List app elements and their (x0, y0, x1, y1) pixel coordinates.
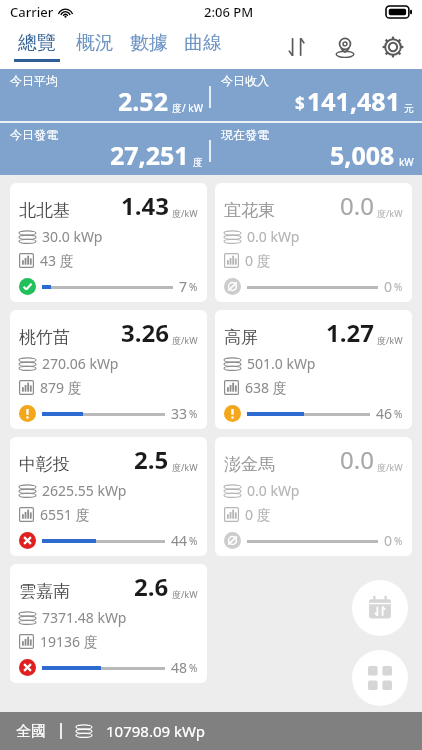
staticText: % (189, 661, 198, 675)
staticText: 澎金馬 (224, 454, 275, 475)
staticText: 0 度 (245, 505, 271, 524)
staticText: 0.0 kWp (247, 481, 300, 500)
button[interactable]: Date sort (352, 580, 408, 636)
staticText: % (394, 407, 403, 421)
button[interactable]: 高屏 (215, 310, 412, 429)
staticText: 今日發電 (10, 127, 58, 142)
button[interactable]: 曲線 (182, 31, 224, 62)
staticText: 度/kW (377, 461, 403, 473)
staticText: 度/kW (172, 588, 198, 600)
staticText: 今日收入 (221, 73, 269, 88)
staticText: % (394, 280, 403, 294)
staticText: 度/kW (377, 207, 403, 219)
button[interactable]: Sort (282, 32, 312, 62)
staticText: 44 (171, 531, 188, 550)
button[interactable]: Location (330, 32, 360, 62)
staticText: 0 度 (245, 251, 271, 270)
button[interactable]: 宜花東 (215, 183, 412, 302)
button[interactable]: 數據 (128, 31, 170, 62)
staticText: 0 (384, 277, 393, 296)
button[interactable]: 北北基 (10, 183, 207, 302)
staticText: 3.26 (121, 316, 169, 349)
staticText: 度/kW (172, 207, 198, 219)
staticText: 度/kW (377, 334, 403, 346)
staticText: 43 度 (40, 251, 74, 270)
staticText: 46 (376, 404, 393, 423)
button[interactable]: Settings (378, 32, 408, 62)
staticText: 5,008 (330, 138, 395, 172)
staticText: % (189, 407, 198, 421)
staticText: 879 度 (40, 378, 82, 397)
staticText: 7371.48 kWp (42, 608, 127, 627)
staticText: 度/kW (172, 461, 198, 473)
button[interactable]: 雲嘉南 (10, 564, 207, 683)
staticText: 501.0 kWp (247, 354, 316, 373)
staticText: 中彰投 (19, 454, 70, 475)
staticText: 桃竹苗 (19, 327, 70, 348)
staticText: 宜花東 (224, 200, 275, 221)
staticText: 2.6 (134, 570, 169, 603)
staticText: 638 度 (245, 378, 287, 397)
staticText: 現在發電 (221, 127, 269, 142)
staticText: 全國 (16, 722, 46, 741)
staticText: 33 (171, 404, 188, 423)
staticText: 度/ kW (172, 101, 203, 115)
button[interactable]: 澎金馬 (215, 437, 412, 556)
staticText: 2.52 (118, 84, 168, 118)
button[interactable]: Grid view (352, 650, 408, 706)
staticText: 19136 度 (40, 632, 98, 651)
staticText: 0.0 (340, 189, 374, 222)
staticText: Carrier (10, 3, 54, 21)
staticText: 1.43 (121, 189, 169, 222)
button[interactable]: 桃竹苗 (10, 310, 207, 429)
button[interactable]: 中彰投 (10, 437, 207, 556)
staticText: 141,481 (307, 84, 400, 118)
staticText: 0.0 (340, 443, 374, 476)
button[interactable]: 總覽 (12, 31, 62, 62)
button[interactable]: 概況 (74, 31, 116, 62)
staticText: 2:06 PM (204, 3, 254, 21)
staticText: 今日平均 (10, 73, 58, 88)
staticText: $ (295, 92, 305, 115)
staticText: 雲嘉南 (19, 581, 70, 602)
staticText: 曲線 (184, 31, 222, 55)
staticText: 度 (193, 156, 203, 169)
staticText: 北北基 (19, 200, 70, 221)
button[interactable]: 全國 (0, 712, 422, 750)
staticText: 27,251 (110, 138, 189, 172)
staticText: 1.27 (326, 316, 374, 349)
staticText: 高屏 (224, 327, 258, 348)
staticText: 48 (171, 658, 188, 677)
staticText: 度/kW (172, 334, 198, 346)
staticText: 0.0 kWp (247, 227, 300, 246)
staticText: % (189, 534, 198, 548)
staticText: 概況 (76, 31, 114, 55)
staticText: % (189, 280, 198, 294)
staticText: 2625.55 kWp (42, 481, 127, 500)
staticText: kW (399, 155, 414, 169)
staticText: 元 (404, 102, 414, 115)
staticText: 270.06 kWp (42, 354, 119, 373)
staticText: % (394, 534, 403, 548)
staticText: 0 (384, 531, 393, 550)
staticText: 30.0 kWp (42, 227, 103, 246)
staticText: 2.5 (134, 443, 169, 476)
staticText: 數據 (130, 31, 168, 55)
staticText: 總覽 (18, 31, 56, 55)
staticText: 7 (179, 277, 188, 296)
staticText: 6551 度 (40, 505, 90, 524)
staticText: 10798.09 kWp (106, 721, 206, 741)
